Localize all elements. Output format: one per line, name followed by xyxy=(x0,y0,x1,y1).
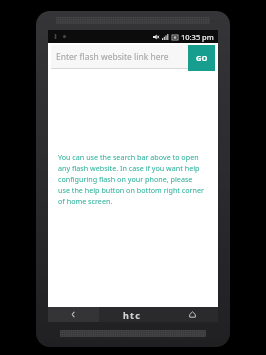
staticText: You can use the search bar above to open… xyxy=(58,152,206,206)
staticText: Enter flash website link here xyxy=(56,51,169,63)
button[interactable]: GO xyxy=(188,45,215,71)
button[interactable]: Recent apps xyxy=(99,307,166,322)
button[interactable]: Enter flash website link here xyxy=(51,45,188,69)
button[interactable]: Home xyxy=(166,307,218,322)
staticText: htc xyxy=(123,309,142,321)
staticText: 10:35 pm xyxy=(181,32,214,42)
staticText: GO xyxy=(196,53,208,63)
button[interactable]: Back xyxy=(48,307,99,322)
